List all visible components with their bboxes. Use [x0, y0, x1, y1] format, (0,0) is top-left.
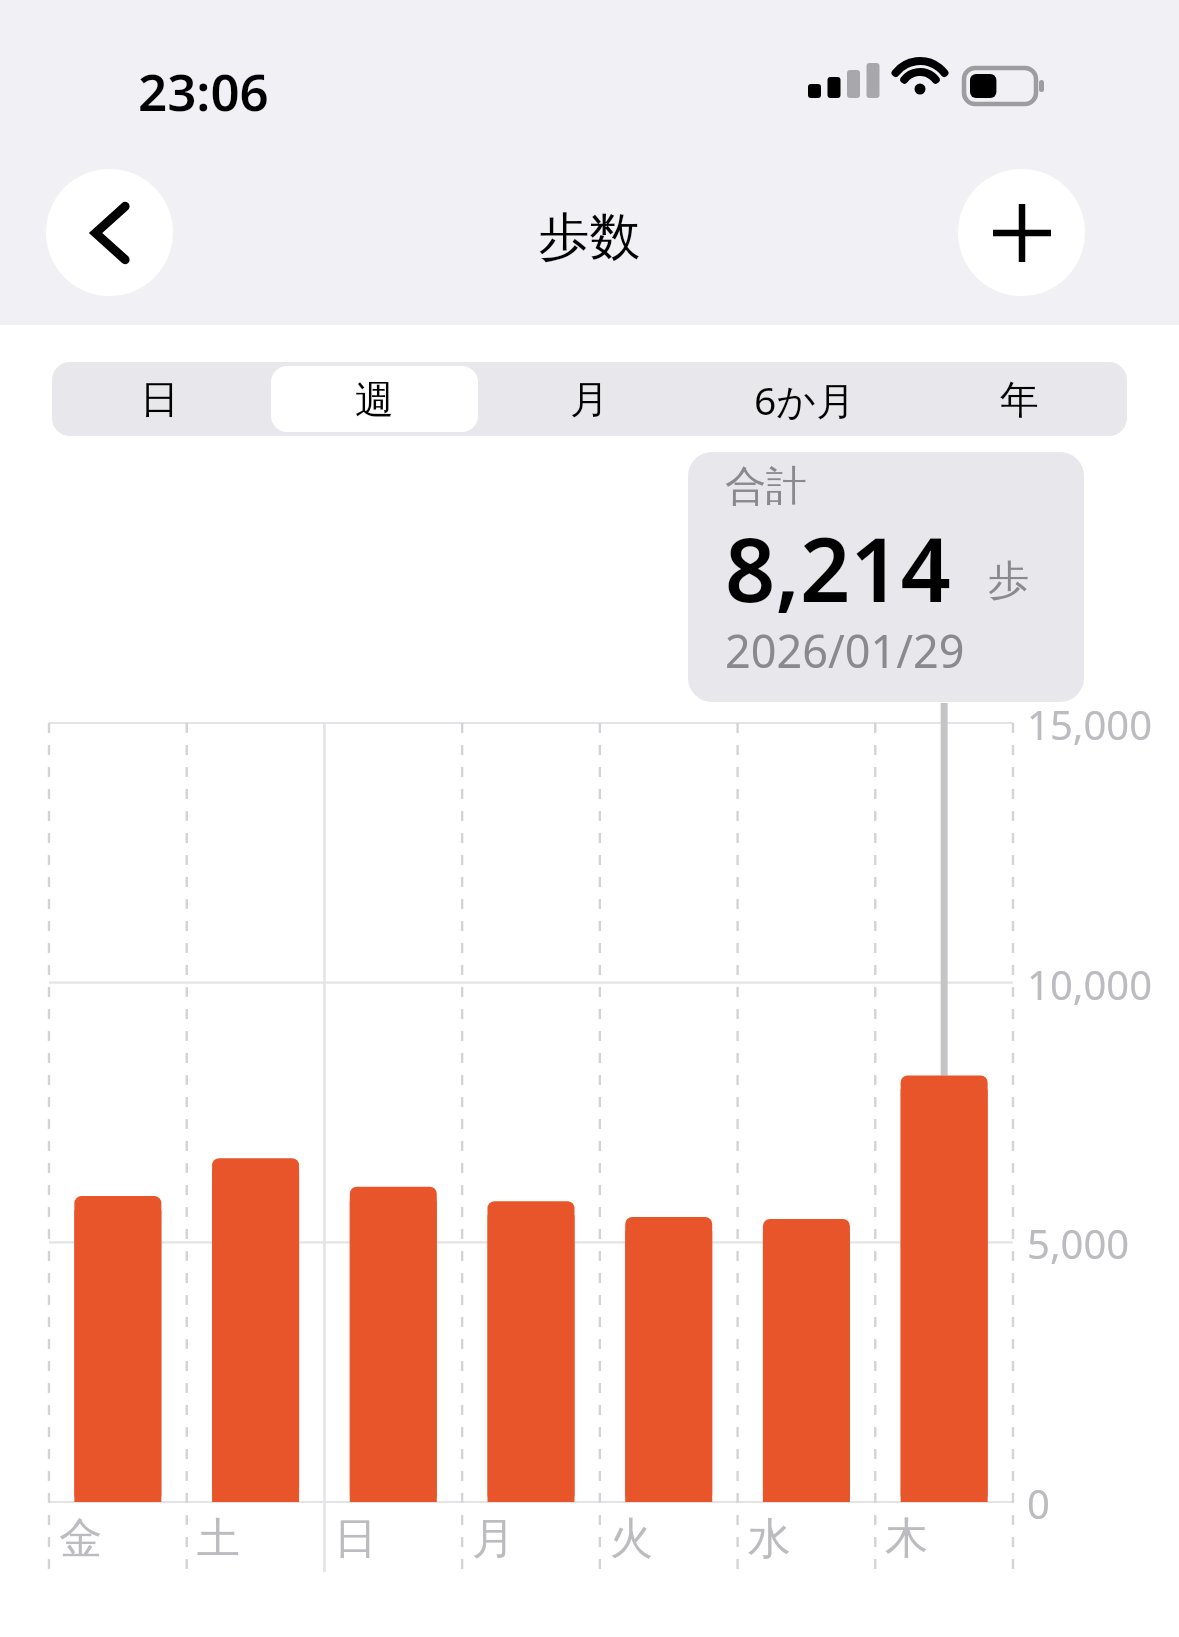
staticText: 合計 — [725, 461, 807, 513]
staticText: 2026/01/29 — [725, 620, 965, 681]
staticText: 月 — [570, 375, 609, 424]
button[interactable]: 月 — [482, 362, 697, 436]
staticText: 火 — [610, 1512, 653, 1566]
staticText: 8,214 — [725, 508, 951, 628]
button[interactable]: 週 — [267, 362, 482, 436]
button[interactable]: 日 — [52, 362, 267, 436]
staticText: 10,000 — [1027, 957, 1153, 1011]
button[interactable]: 追加 — [958, 169, 1085, 296]
staticText: 23:06 — [138, 56, 269, 125]
staticText: 5,000 — [1027, 1216, 1130, 1270]
staticText: 15,000 — [1027, 697, 1153, 751]
button[interactable]: 戻る — [46, 169, 173, 296]
staticText: 歩 — [988, 555, 1029, 607]
staticText: 土 — [197, 1512, 240, 1566]
staticText: 歩数 — [0, 205, 1179, 269]
staticText: 年 — [1000, 375, 1039, 424]
staticText: 0 — [1027, 1476, 1050, 1530]
staticText: 金 — [59, 1512, 102, 1566]
staticText: 日 — [140, 375, 179, 424]
staticText: 水 — [748, 1512, 791, 1566]
button[interactable]: 年 — [912, 362, 1127, 436]
staticText: 日 — [334, 1512, 377, 1566]
staticText: 6か月 — [754, 373, 856, 426]
button[interactable]: 6か月 — [697, 362, 912, 436]
staticText: 木 — [885, 1512, 928, 1566]
staticText: 週 — [355, 375, 394, 424]
staticText: 月 — [472, 1512, 515, 1566]
